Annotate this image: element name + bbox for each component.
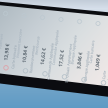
button[interactable] xyxy=(0,0,108,108)
